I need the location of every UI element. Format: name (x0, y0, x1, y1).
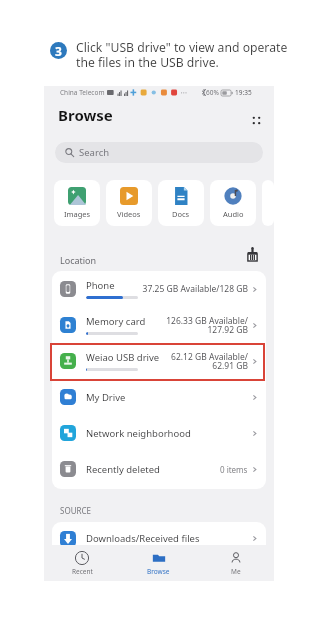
staticText: Browse (147, 567, 170, 576)
staticText: Click "USB drive" to view and operate th… (76, 39, 288, 71)
staticText: Browse (58, 105, 113, 125)
staticText: Memory card (86, 315, 146, 328)
staticText: 19:35 (235, 88, 252, 97)
button[interactable]: Audio (210, 180, 256, 226)
button[interactable]: Network neighborhood (52, 415, 266, 451)
staticText: 126.33 GB Available/ 127.92 GB (166, 315, 248, 336)
staticText: Search (79, 146, 110, 159)
staticText: Weiao USB drive (86, 351, 160, 364)
button[interactable]: Me (197, 545, 274, 581)
button[interactable]: More options (247, 111, 265, 129)
staticText: 62.12 GB Available/ 62.91 GB (171, 351, 248, 372)
staticText: Docs (172, 209, 190, 219)
button[interactable]: Clean up (238, 241, 266, 267)
staticText: Me (231, 567, 241, 576)
staticText: Location (60, 254, 97, 266)
button[interactable]: My Drive (52, 379, 266, 415)
button[interactable]: Recently deleted (52, 451, 266, 487)
button[interactable]: Browse (120, 545, 197, 581)
staticText: 60% (206, 88, 219, 97)
button[interactable]: Phone (52, 271, 266, 307)
staticText: Recent (72, 567, 93, 576)
staticText: 3 (55, 43, 62, 59)
button[interactable]: Search (55, 142, 263, 163)
staticText: Images (64, 209, 91, 219)
staticText: Videos (117, 209, 141, 219)
button[interactable]: Weiao USB drive (52, 343, 266, 379)
button[interactable]: Recent (44, 545, 120, 581)
staticText: Downloads/Received files (86, 532, 200, 545)
staticText: Network neighborhood (86, 427, 191, 440)
button[interactable]: Images (54, 180, 100, 226)
staticText: My Drive (86, 391, 126, 404)
staticText: Phone (86, 279, 115, 292)
staticText: 0 items (220, 464, 248, 475)
staticText: China Telecom (60, 88, 105, 97)
staticText: 37.25 GB Available/128 GB (142, 283, 248, 295)
button[interactable]: Videos (106, 180, 152, 226)
button[interactable]: Downloads/Received files (52, 522, 266, 555)
staticText: Audio (223, 209, 244, 219)
staticText: Recently deleted (86, 463, 160, 476)
button[interactable]: Docs (158, 180, 204, 226)
staticText: SOURCE (60, 505, 91, 516)
button[interactable]: Memory card (52, 307, 266, 343)
